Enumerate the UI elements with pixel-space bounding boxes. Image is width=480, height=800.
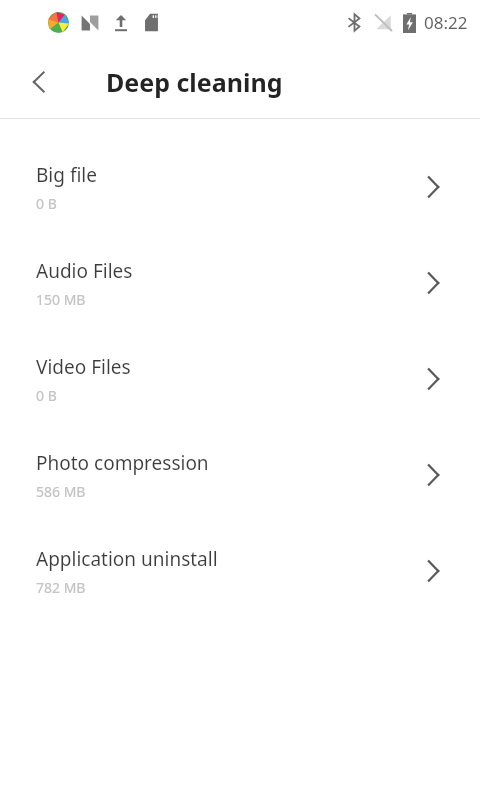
staticText: 782 MB	[36, 578, 86, 597]
button[interactable]: Photo compression	[0, 427, 480, 523]
staticText: Video Files	[36, 354, 131, 380]
staticText: Big file	[36, 162, 97, 188]
button[interactable]: Back	[14, 57, 64, 107]
button[interactable]: Application uninstall	[0, 523, 480, 619]
staticText: 586 MB	[36, 482, 86, 501]
staticText: Application uninstall	[36, 546, 218, 572]
button[interactable]: Audio Files	[0, 235, 480, 331]
button[interactable]: Video Files	[0, 331, 480, 427]
staticText: 08:22	[424, 11, 468, 34]
button[interactable]: Big file	[0, 139, 480, 235]
staticText: Photo compression	[36, 450, 209, 476]
staticText: Audio Files	[36, 258, 133, 284]
staticText: Deep cleaning	[106, 65, 283, 99]
staticText: 0 B	[36, 386, 57, 405]
staticText: 150 MB	[36, 290, 86, 309]
staticText: 0 B	[36, 194, 57, 213]
